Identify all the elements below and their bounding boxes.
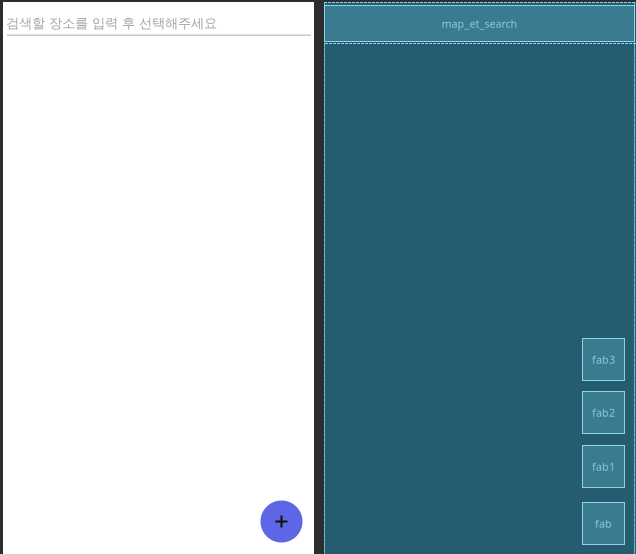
staticText: fab3 <box>592 352 615 367</box>
staticText: fab1 <box>592 459 615 474</box>
button[interactable]: Add <box>260 500 302 542</box>
button[interactable]: map_et_search <box>324 5 634 41</box>
staticText: 검색할 장소를 입력 후 선택해주세요 <box>6 15 217 31</box>
staticText: fab2 <box>592 405 615 420</box>
button[interactable]: fab2 <box>582 391 624 433</box>
staticText: map_et_search <box>441 16 517 31</box>
staticText: fab <box>595 516 612 531</box>
button[interactable]: fab1 <box>582 445 624 487</box>
button[interactable]: fab <box>582 502 624 544</box>
button[interactable]: fab3 <box>582 338 624 380</box>
button[interactable]: 검색할 장소를 입력 후 선택해주세요 <box>7 7 311 37</box>
